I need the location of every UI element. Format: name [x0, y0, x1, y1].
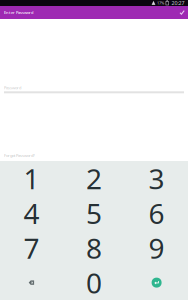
button[interactable]: 1 — [0, 161, 63, 196]
button[interactable]: 2 — [63, 161, 125, 196]
staticText: 4 — [23, 194, 39, 232]
button[interactable]: 3 — [125, 161, 188, 196]
staticText: 7 — [23, 229, 39, 266]
staticText: 0 — [86, 264, 102, 300]
staticText: 20:27 — [171, 0, 184, 7]
button[interactable]: 9 — [125, 230, 188, 265]
staticText: Forgot Password? — [4, 153, 35, 158]
staticText: Password — [4, 85, 21, 90]
staticText: 17% — [157, 0, 164, 6]
button[interactable]: 5 — [63, 196, 125, 231]
staticText: 5 — [86, 194, 102, 232]
staticText: 8 — [86, 229, 102, 266]
staticText: 3 — [149, 160, 165, 197]
button[interactable]: 6 — [125, 196, 188, 231]
button[interactable]: 7 — [0, 230, 63, 265]
staticText: 2 — [86, 160, 102, 197]
button[interactable]: 0 — [63, 265, 125, 300]
button[interactable]: Confirm — [176, 5, 188, 19]
staticText: 9 — [149, 229, 165, 266]
button[interactable]: 8 — [63, 230, 125, 265]
button[interactable]: Forgot Password? — [4, 153, 35, 158]
button[interactable]: Delete — [0, 265, 63, 300]
button[interactable]: Submit — [125, 265, 188, 300]
staticText: 1 — [23, 160, 39, 197]
button[interactable]: 4 — [0, 196, 63, 231]
staticText: Enter Password — [4, 10, 33, 15]
staticText: 6 — [149, 194, 165, 232]
